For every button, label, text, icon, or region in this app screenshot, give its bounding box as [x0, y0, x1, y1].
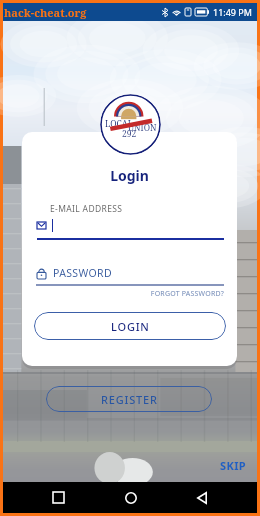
staticText: REGISTER [101, 392, 158, 407]
staticText: PASSWORD [53, 266, 112, 280]
staticText: Login [22, 166, 237, 185]
staticText: SKIP [220, 458, 247, 473]
button[interactable]: Recents [43, 482, 74, 513]
staticText: LOCAL [105, 118, 134, 130]
staticText: UNION [128, 122, 157, 134]
button[interactable]: REGISTER [46, 386, 212, 412]
staticText: E-MAIL ADDRESS [50, 203, 123, 215]
button[interactable]: SKIP [216, 455, 250, 475]
button[interactable]: LOGIN [34, 312, 226, 340]
staticText: LOGIN [111, 319, 150, 334]
button[interactable]: Home [115, 482, 146, 513]
staticText: 11:49 PM [213, 6, 252, 18]
button[interactable]: FORGOT PASSWORD? [36, 289, 224, 299]
staticText: hack-cheat.org [4, 5, 87, 20]
staticText: 292 [122, 128, 137, 140]
button[interactable]: Back [186, 482, 217, 513]
